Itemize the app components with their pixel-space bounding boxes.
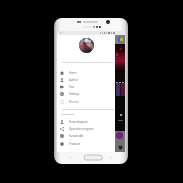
staticText: Author (69, 78, 78, 82)
staticText: Operation program (69, 127, 94, 131)
staticText: Applications (61, 113, 75, 116)
staticText: Views diagram (69, 120, 88, 124)
button[interactable]: One (57, 83, 115, 90)
staticText: Monitor (69, 100, 80, 104)
staticText: Products (69, 142, 81, 146)
staticText: Settings (69, 92, 80, 96)
button[interactable]: Sustainable (57, 132, 115, 139)
button[interactable]: Home (57, 69, 115, 76)
button[interactable]: Author (57, 76, 115, 83)
button[interactable]: Views diagram (57, 118, 115, 125)
button[interactable]: Products (57, 140, 115, 147)
staticText: Home (69, 71, 77, 75)
button[interactable]: Monitor (57, 98, 115, 105)
staticText: One (69, 85, 75, 89)
button[interactable]: Operation program (57, 125, 115, 132)
staticText: Sustainable (69, 134, 84, 138)
button[interactable]: Settings (57, 90, 115, 97)
